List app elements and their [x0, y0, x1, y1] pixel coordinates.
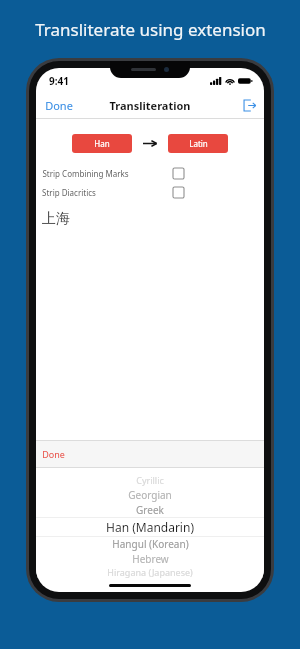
staticText: 上海 — [42, 210, 70, 228]
staticText: Han — [94, 138, 110, 149]
button[interactable]: Georgian — [36, 487, 264, 502]
staticText: Done — [42, 448, 65, 460]
staticText: Hiragana (Japanese) — [107, 566, 193, 578]
button[interactable]: Hebrew — [36, 551, 264, 566]
staticText: Strip Combining Marks — [42, 168, 129, 179]
staticText: Greek — [136, 503, 164, 517]
button[interactable]: Greek — [36, 502, 264, 517]
button[interactable]: Strip Combining Marks — [36, 168, 264, 179]
staticText: Transliterate using extension — [35, 18, 266, 41]
button[interactable]: Strip Diacritics — [36, 187, 264, 198]
staticText: Georgian — [128, 488, 172, 502]
button[interactable]: Cyrillic — [36, 472, 264, 487]
button[interactable]: Han — [72, 134, 132, 153]
staticText: Han (Mandarin) — [106, 519, 194, 535]
staticText: 9:41 — [49, 74, 69, 88]
staticText: Cyrillic — [136, 474, 164, 486]
button[interactable]: Export — [235, 96, 264, 115]
button[interactable]: Done — [36, 94, 82, 117]
button[interactable]: Hiragana (Japanese) — [36, 566, 264, 578]
button[interactable]: Hangul (Korean) — [36, 536, 264, 551]
staticText: Hebrew — [132, 552, 169, 566]
staticText: Hangul (Korean) — [112, 537, 189, 551]
button[interactable]: Latin — [168, 134, 228, 153]
staticText: Transliteration — [109, 98, 191, 113]
button[interactable]: Done — [36, 444, 71, 464]
staticText: Strip Diacritics — [42, 187, 96, 198]
staticText: Latin — [189, 138, 208, 149]
button[interactable]: Han (Mandarin) — [36, 517, 264, 536]
staticText: Done — [45, 98, 73, 113]
